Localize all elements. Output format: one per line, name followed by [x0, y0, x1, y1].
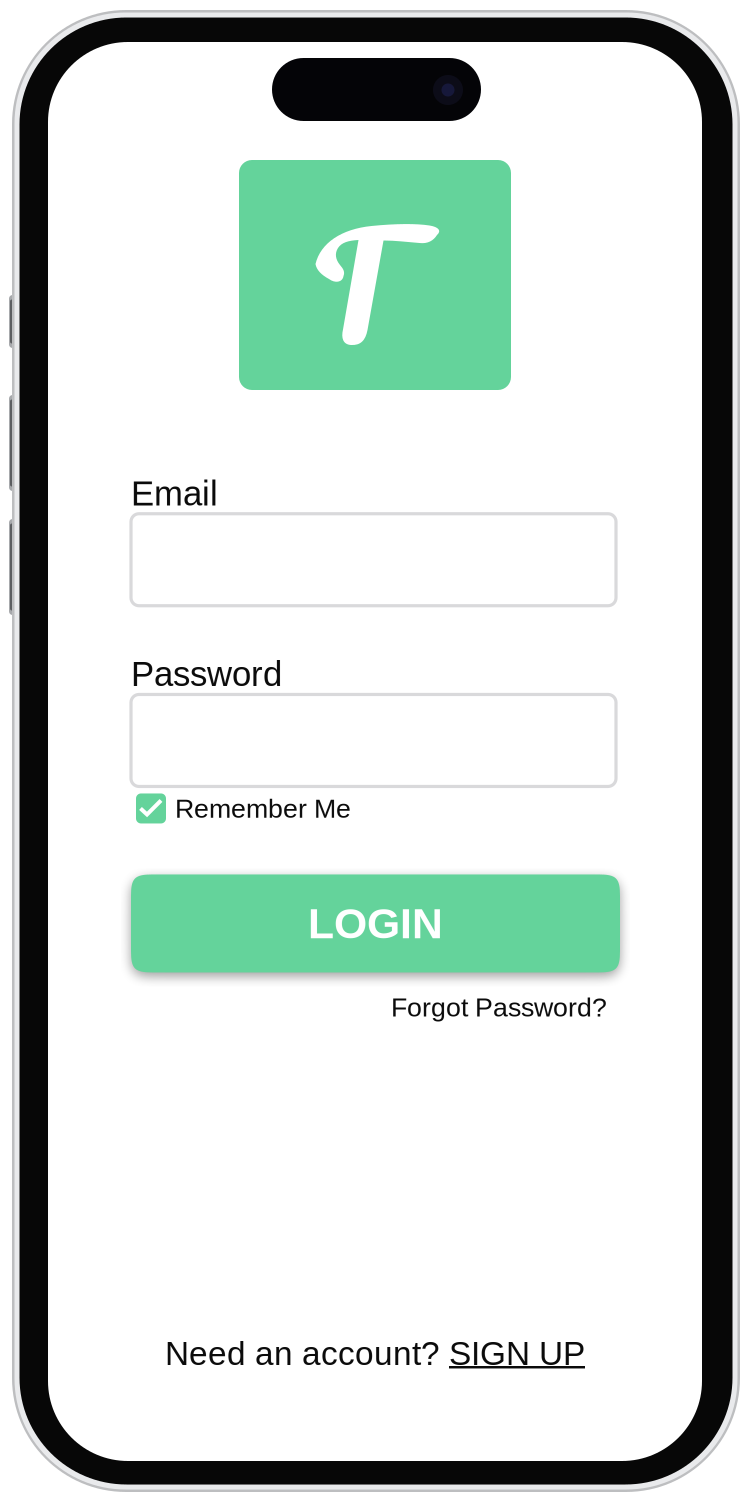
button[interactable]: LOGIN — [131, 874, 620, 972]
button[interactable]: Remember Me — [136, 791, 351, 825]
staticText: Forgot Password? — [391, 992, 607, 1022]
button[interactable]: Forgot Password? — [391, 992, 607, 1022]
button[interactable]: SIGN UP — [449, 1335, 585, 1372]
staticText: LOGIN — [308, 900, 443, 947]
staticText: Password — [131, 655, 282, 693]
staticText: Need an account? — [165, 1335, 449, 1372]
staticText: Email — [131, 474, 218, 513]
staticText: Remember Me — [175, 794, 351, 823]
staticText: SIGN UP — [449, 1335, 585, 1372]
